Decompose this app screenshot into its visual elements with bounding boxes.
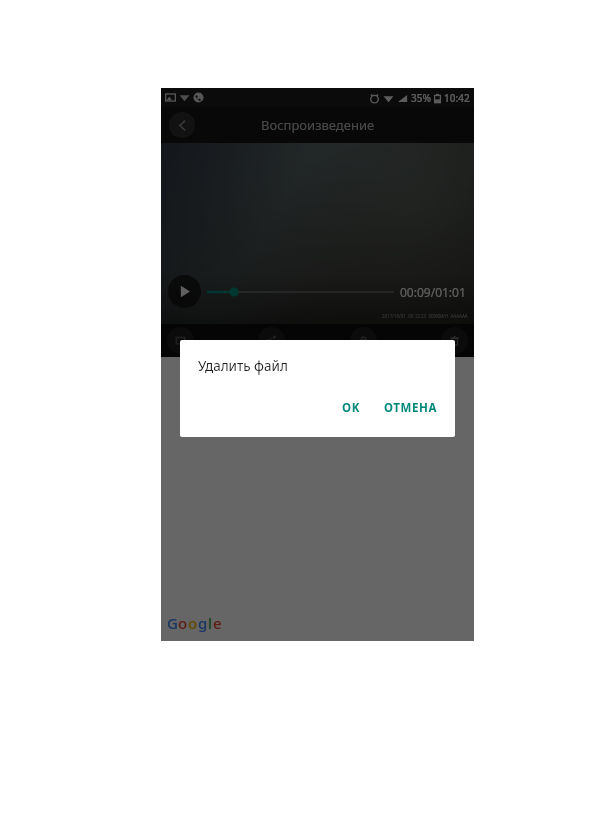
button[interactable]: ОТМЕНА — [375, 393, 447, 423]
button[interactable]: OK — [333, 393, 369, 423]
button[interactable]: Share — [258, 327, 285, 354]
button[interactable]: Seek — [207, 284, 394, 300]
staticText: 35% — [411, 91, 431, 105]
button[interactable]: Back — [169, 112, 195, 138]
staticText: o — [188, 613, 198, 633]
staticText: l — [208, 613, 213, 633]
staticText: Удалить файл — [198, 357, 288, 375]
staticText: ОТМЕНА — [384, 400, 438, 416]
button[interactable]: Lock — [350, 327, 377, 354]
staticText: g — [198, 613, 208, 633]
staticText: 00:09/01:01 — [400, 284, 466, 300]
button[interactable]: Delete — [441, 327, 468, 354]
staticText: e — [213, 613, 222, 633]
staticText: 2017/10/01 00:12:23 000KM/H AAAAAA — [382, 313, 468, 319]
staticText: o — [178, 613, 188, 633]
staticText: G — [167, 613, 178, 633]
button[interactable]: Play — [168, 275, 201, 308]
staticText: Воспроизведение — [261, 116, 375, 134]
staticText: 10:42 — [444, 91, 470, 105]
staticText: OK — [342, 400, 360, 416]
button[interactable]: Screenshot — [167, 327, 194, 354]
